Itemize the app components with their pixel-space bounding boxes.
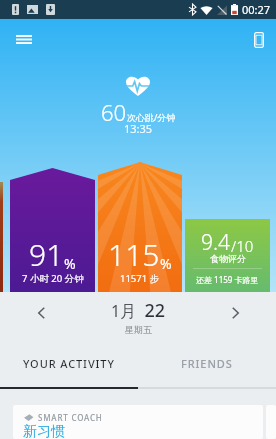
staticText: 11571 步	[120, 272, 160, 285]
staticText: 新习惯	[23, 423, 65, 439]
staticText: 91	[29, 234, 64, 275]
button[interactable]: SMART COACH	[13, 405, 263, 439]
staticText: 食物评分	[210, 253, 246, 264]
button[interactable]: Connected device	[241, 19, 276, 52]
staticText: 1月 22	[111, 298, 166, 323]
staticText: 星期五	[125, 324, 152, 335]
button[interactable]: YOUR ACTIVITY	[0, 340, 138, 387]
staticText: %	[64, 254, 76, 273]
staticText: %	[160, 254, 172, 273]
button[interactable]: Open navigation menu	[0, 19, 47, 52]
button[interactable]: 9.4	[185, 219, 270, 292]
button[interactable]: 115	[98, 162, 182, 292]
button[interactable]: Previous day	[0, 292, 82, 340]
button[interactable]: FRIENDS	[138, 340, 276, 387]
staticText: 9.4	[201, 228, 231, 257]
staticText: SMART COACH	[38, 412, 103, 423]
button[interactable]: Next day	[194, 292, 276, 340]
staticText: 115	[108, 234, 160, 275]
staticText: 次心跳/分钟	[127, 111, 176, 123]
staticText: FRIENDS	[181, 356, 233, 371]
staticText: 60	[101, 97, 127, 127]
staticText: 00:27	[242, 2, 271, 17]
staticText: 还差 1159 卡路里	[196, 274, 259, 285]
staticText: /10	[231, 236, 254, 256]
button[interactable]: 91	[10, 168, 95, 292]
staticText: 7 小时 20 分钟	[22, 272, 84, 285]
staticText: 13:35	[124, 121, 153, 136]
staticText: YOUR ACTIVITY	[23, 356, 115, 371]
